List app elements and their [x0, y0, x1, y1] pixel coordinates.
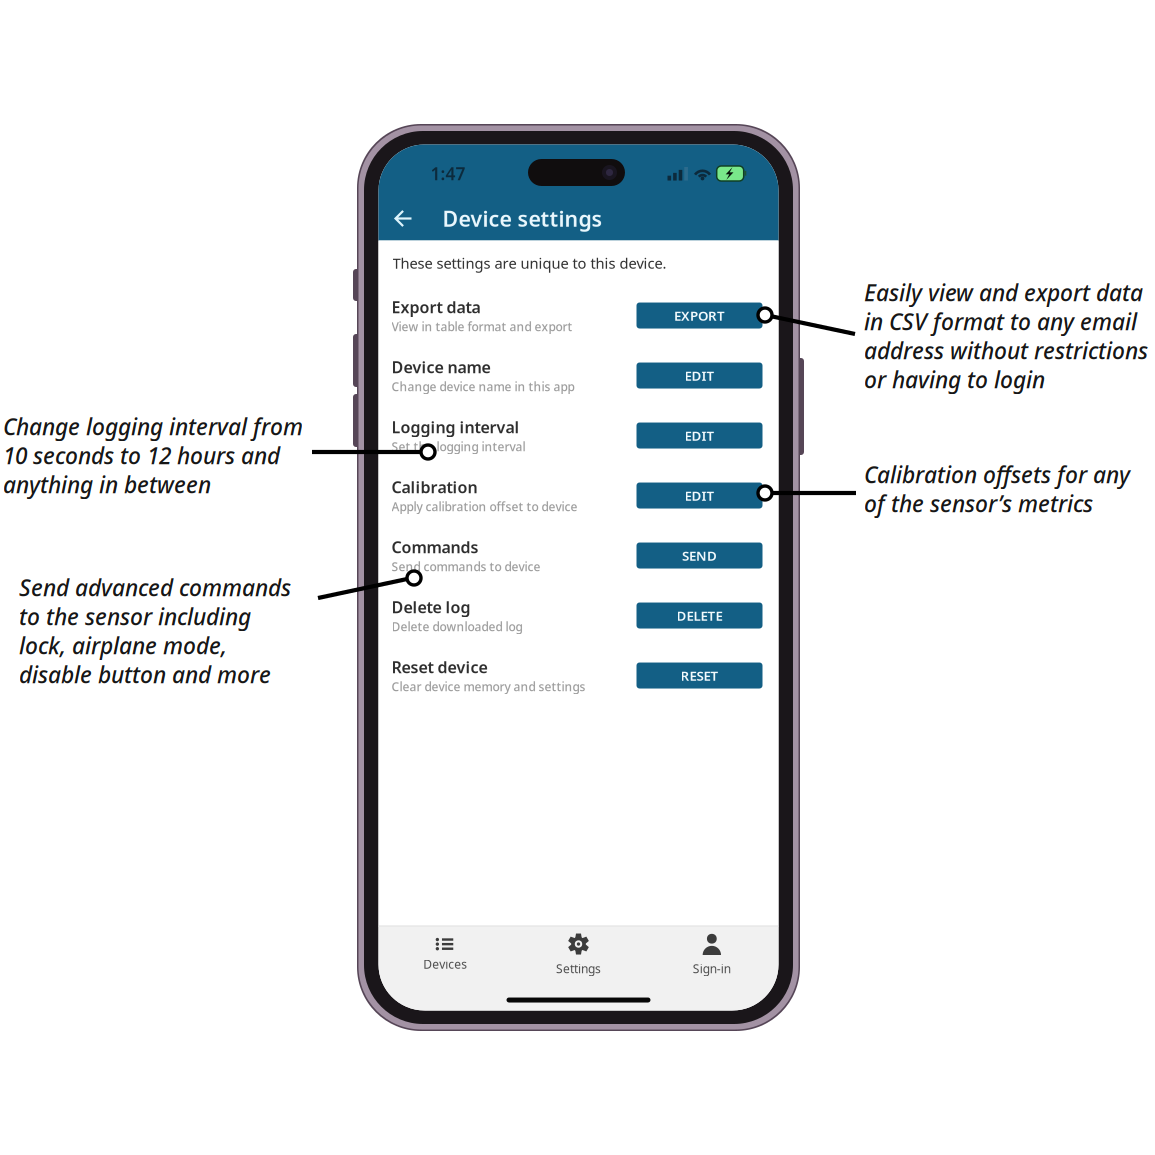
staticText: EXPORT [674, 307, 725, 324]
staticText: in CSV format to any email [864, 306, 1137, 336]
staticText: to the sensor including [19, 601, 251, 631]
staticText: anything in between [3, 469, 211, 499]
staticText: address without restrictions [864, 335, 1148, 365]
staticText: Calibration offsets for any [864, 459, 1130, 489]
button[interactable]: Back [386, 201, 420, 235]
staticText: Send commands to device [391, 559, 540, 575]
staticText: Devices [423, 956, 467, 972]
staticText: Delete downloaded log [391, 619, 522, 635]
staticText: Delete log [391, 596, 470, 618]
staticText: View in table format and export [391, 319, 572, 335]
button[interactable]: Settings [512, 924, 645, 986]
button[interactable]: EDIT [636, 362, 762, 388]
staticText: Easily view and export data [864, 277, 1143, 307]
button[interactable]: EDIT [636, 422, 762, 448]
staticText: EDIT [684, 367, 714, 384]
staticText: Settings [556, 960, 601, 976]
button[interactable]: EXPORT [636, 302, 762, 328]
button[interactable]: Sign-in [645, 924, 778, 986]
staticText: Send advanced commands [19, 572, 291, 602]
staticText: Set the logging interval [391, 439, 525, 455]
staticText: Clear device memory and settings [391, 679, 585, 695]
staticText: Logging interval [391, 416, 519, 438]
staticText: These settings are unique to this device… [392, 253, 666, 273]
button[interactable]: DELETE [636, 602, 762, 628]
button[interactable]: SEND [636, 542, 762, 568]
staticText: Device name [391, 356, 490, 378]
button[interactable]: RESET [636, 662, 762, 688]
staticText: DELETE [676, 607, 722, 624]
staticText: Change device name in this app [391, 379, 574, 395]
button[interactable]: Devices [378, 924, 512, 986]
staticText: 1:47 [430, 162, 465, 185]
staticText: Sign-in [693, 960, 731, 976]
staticText: EDIT [684, 427, 714, 444]
button[interactable]: EDIT [636, 482, 762, 508]
staticText: Calibration [391, 476, 477, 498]
staticText: SEND [682, 547, 717, 564]
staticText: Change logging interval from [3, 411, 303, 441]
staticText: Device settings [442, 204, 602, 233]
staticText: RESET [680, 667, 718, 684]
staticText: Reset device [391, 656, 487, 678]
staticText: lock, airplane mode, [19, 630, 227, 660]
staticText: or having to login [864, 364, 1045, 394]
staticText: EDIT [684, 487, 714, 504]
staticText: Commands [391, 536, 478, 558]
staticText: 10 seconds to 12 hours and [3, 440, 280, 470]
staticText: disable button and more [19, 659, 271, 689]
staticText: of the sensor’s metrics [864, 488, 1093, 518]
staticText: Export data [391, 296, 480, 318]
staticText: Apply calibration offset to device [391, 499, 577, 515]
